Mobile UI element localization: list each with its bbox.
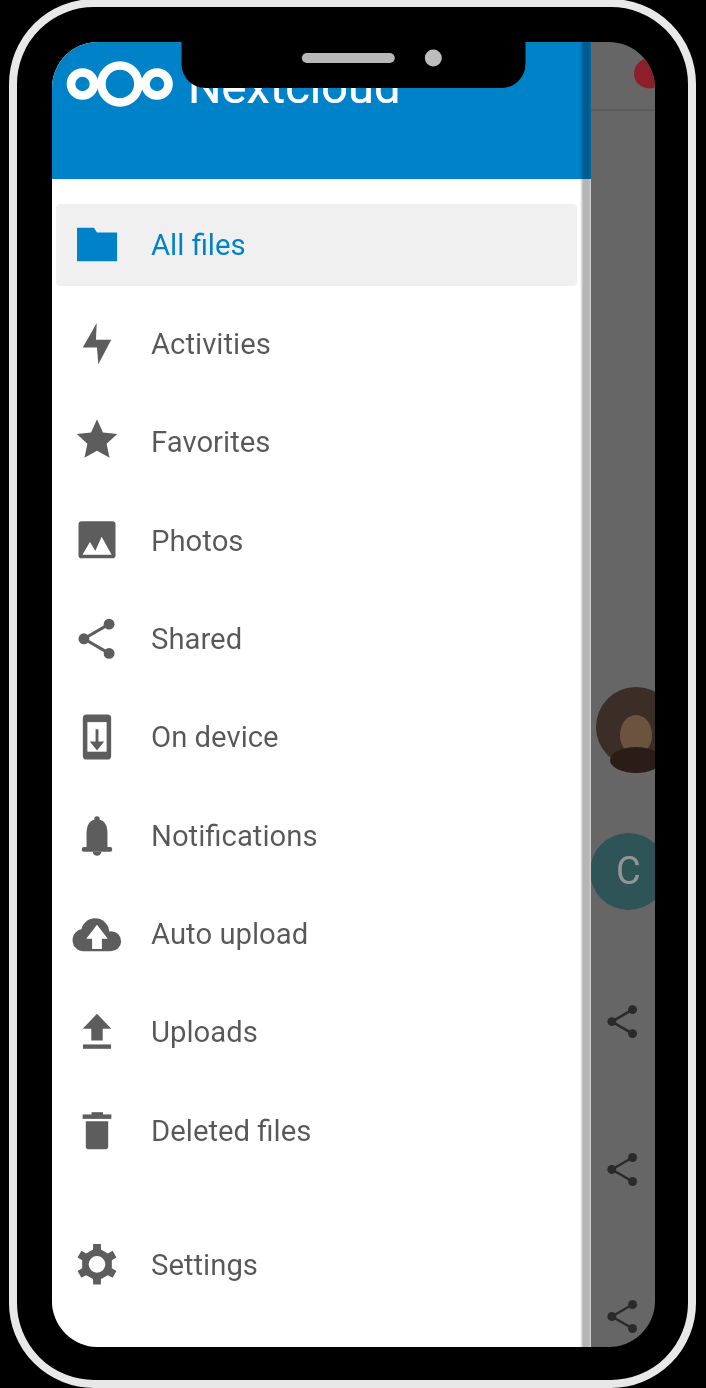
button[interactable]: All files bbox=[56, 204, 577, 286]
button[interactable]: Settings bbox=[56, 1224, 577, 1306]
staticText: Activities bbox=[151, 327, 271, 361]
staticText: Shared bbox=[151, 622, 243, 656]
button[interactable]: Activities bbox=[56, 303, 577, 385]
button[interactable]: Photos bbox=[56, 500, 577, 582]
staticText: Auto upload bbox=[151, 917, 309, 951]
button[interactable]: On device bbox=[56, 696, 577, 778]
button[interactable]: Shared bbox=[56, 598, 577, 680]
button[interactable]: Notifications bbox=[56, 795, 577, 877]
staticText: Uploads bbox=[151, 1015, 258, 1049]
staticText: Notifications bbox=[151, 819, 318, 853]
button[interactable]: Deleted files bbox=[56, 1090, 577, 1172]
staticText: C bbox=[616, 849, 641, 894]
staticText: All files bbox=[151, 228, 246, 262]
staticText: Nextcloud bbox=[188, 59, 401, 114]
button[interactable]: Auto upload bbox=[56, 893, 577, 975]
staticText: Settings bbox=[151, 1248, 258, 1282]
staticText: On device bbox=[151, 720, 279, 754]
staticText: Favorites bbox=[151, 425, 271, 459]
button[interactable]: Favorites bbox=[56, 401, 577, 483]
button[interactable]: Uploads bbox=[56, 991, 577, 1073]
staticText: Photos bbox=[151, 524, 244, 558]
staticText: Deleted files bbox=[151, 1114, 312, 1148]
